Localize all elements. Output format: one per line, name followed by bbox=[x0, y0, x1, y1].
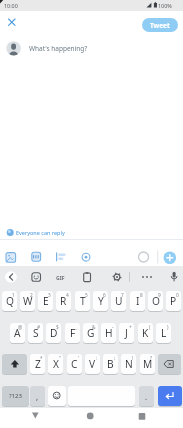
staticText: ?123 bbox=[9, 392, 22, 400]
button[interactable] bbox=[140, 270, 154, 284]
button[interactable]: A bbox=[10, 323, 25, 343]
button[interactable]: Tweet bbox=[142, 18, 178, 32]
staticText: " bbox=[59, 355, 61, 362]
staticText: , bbox=[36, 391, 39, 402]
button[interactable]: L bbox=[156, 323, 171, 343]
button[interactable] bbox=[4, 270, 18, 284]
staticText: Tweet bbox=[150, 21, 170, 30]
staticText: 9 bbox=[158, 292, 161, 299]
button[interactable] bbox=[162, 250, 178, 266]
staticText: W bbox=[23, 294, 33, 308]
button[interactable] bbox=[127, 406, 157, 428]
staticText: Everyone can reply bbox=[16, 229, 65, 236]
button[interactable]: T bbox=[75, 291, 90, 311]
button[interactable]: G bbox=[83, 323, 98, 343]
button[interactable]: ?123 bbox=[2, 386, 29, 406]
staticText: N bbox=[125, 357, 133, 371]
staticText: * bbox=[40, 355, 43, 362]
staticText: G bbox=[87, 326, 95, 340]
staticText: # bbox=[37, 324, 41, 331]
button[interactable] bbox=[167, 270, 181, 284]
staticText: L bbox=[161, 326, 167, 340]
staticText: : bbox=[96, 355, 98, 362]
staticText: U bbox=[115, 294, 123, 308]
staticText: M bbox=[143, 357, 153, 371]
staticText: K bbox=[142, 326, 149, 340]
button[interactable]: I bbox=[130, 291, 145, 311]
button[interactable] bbox=[2, 224, 72, 238]
button[interactable] bbox=[78, 248, 94, 264]
staticText: ? bbox=[150, 355, 153, 362]
button[interactable]: R bbox=[56, 291, 71, 311]
staticText: Q bbox=[6, 294, 14, 308]
button[interactable]: J bbox=[119, 323, 134, 343]
button[interactable]: O bbox=[148, 291, 163, 311]
button[interactable]: F bbox=[65, 323, 80, 343]
button[interactable] bbox=[75, 406, 105, 428]
button[interactable]: W bbox=[20, 291, 35, 311]
button[interactable] bbox=[48, 386, 66, 406]
button[interactable] bbox=[29, 270, 43, 284]
staticText: P bbox=[170, 294, 177, 308]
button[interactable] bbox=[53, 270, 67, 284]
staticText: O bbox=[152, 294, 160, 308]
staticText: ) bbox=[167, 324, 169, 331]
button[interactable]: P bbox=[166, 291, 181, 311]
staticText: A bbox=[14, 326, 21, 340]
button[interactable] bbox=[80, 270, 94, 284]
staticText: H bbox=[105, 326, 113, 340]
staticText: 5 bbox=[85, 292, 88, 299]
staticText: R bbox=[60, 294, 67, 308]
button[interactable]: . bbox=[139, 386, 154, 406]
staticText: B bbox=[107, 357, 114, 371]
button[interactable] bbox=[20, 406, 50, 428]
button[interactable] bbox=[2, 354, 27, 374]
button[interactable]: D bbox=[46, 323, 61, 343]
staticText: 0 bbox=[176, 292, 179, 299]
button[interactable] bbox=[29, 248, 44, 264]
staticText: 100% bbox=[158, 2, 172, 9]
button[interactable] bbox=[158, 386, 182, 406]
button[interactable]: B bbox=[103, 354, 118, 374]
staticText: D bbox=[50, 326, 58, 340]
staticText: ; bbox=[114, 355, 116, 362]
button[interactable]: V bbox=[85, 354, 100, 374]
button[interactable] bbox=[53, 248, 68, 264]
button[interactable]: M bbox=[140, 354, 155, 374]
staticText: . bbox=[145, 391, 148, 402]
button[interactable]: X bbox=[48, 354, 63, 374]
button[interactable] bbox=[3, 248, 19, 264]
staticText: S bbox=[33, 326, 39, 340]
button[interactable] bbox=[4, 15, 20, 30]
button[interactable] bbox=[158, 354, 181, 374]
staticText: GIF bbox=[56, 274, 65, 281]
button[interactable]: , bbox=[30, 386, 45, 406]
staticText: E bbox=[43, 294, 49, 308]
staticText: 6 bbox=[103, 292, 106, 299]
button[interactable]: U bbox=[111, 291, 126, 311]
button[interactable] bbox=[110, 270, 124, 284]
button[interactable]: Z bbox=[30, 354, 45, 374]
button[interactable]: Y bbox=[93, 291, 108, 311]
staticText: Y bbox=[98, 294, 104, 308]
button[interactable]: C bbox=[67, 354, 82, 374]
staticText: ' bbox=[78, 355, 80, 362]
button[interactable] bbox=[2, 40, 25, 57]
button[interactable]: K bbox=[138, 323, 153, 343]
staticText: 10:00 bbox=[4, 2, 18, 9]
staticText: - bbox=[112, 324, 114, 331]
staticText: Z bbox=[35, 357, 41, 371]
staticText: _ bbox=[75, 324, 78, 331]
button[interactable]: E bbox=[38, 291, 53, 311]
staticText: @ bbox=[18, 324, 23, 331]
button[interactable]: H bbox=[101, 323, 116, 343]
staticText: 1 bbox=[12, 292, 15, 299]
staticText: ! bbox=[132, 355, 134, 362]
button[interactable]: N bbox=[121, 354, 136, 374]
button[interactable]: Q bbox=[2, 291, 17, 311]
staticText: T bbox=[80, 294, 86, 308]
button[interactable]: S bbox=[28, 323, 43, 343]
staticText: F bbox=[70, 326, 76, 340]
staticText: & bbox=[92, 324, 96, 331]
